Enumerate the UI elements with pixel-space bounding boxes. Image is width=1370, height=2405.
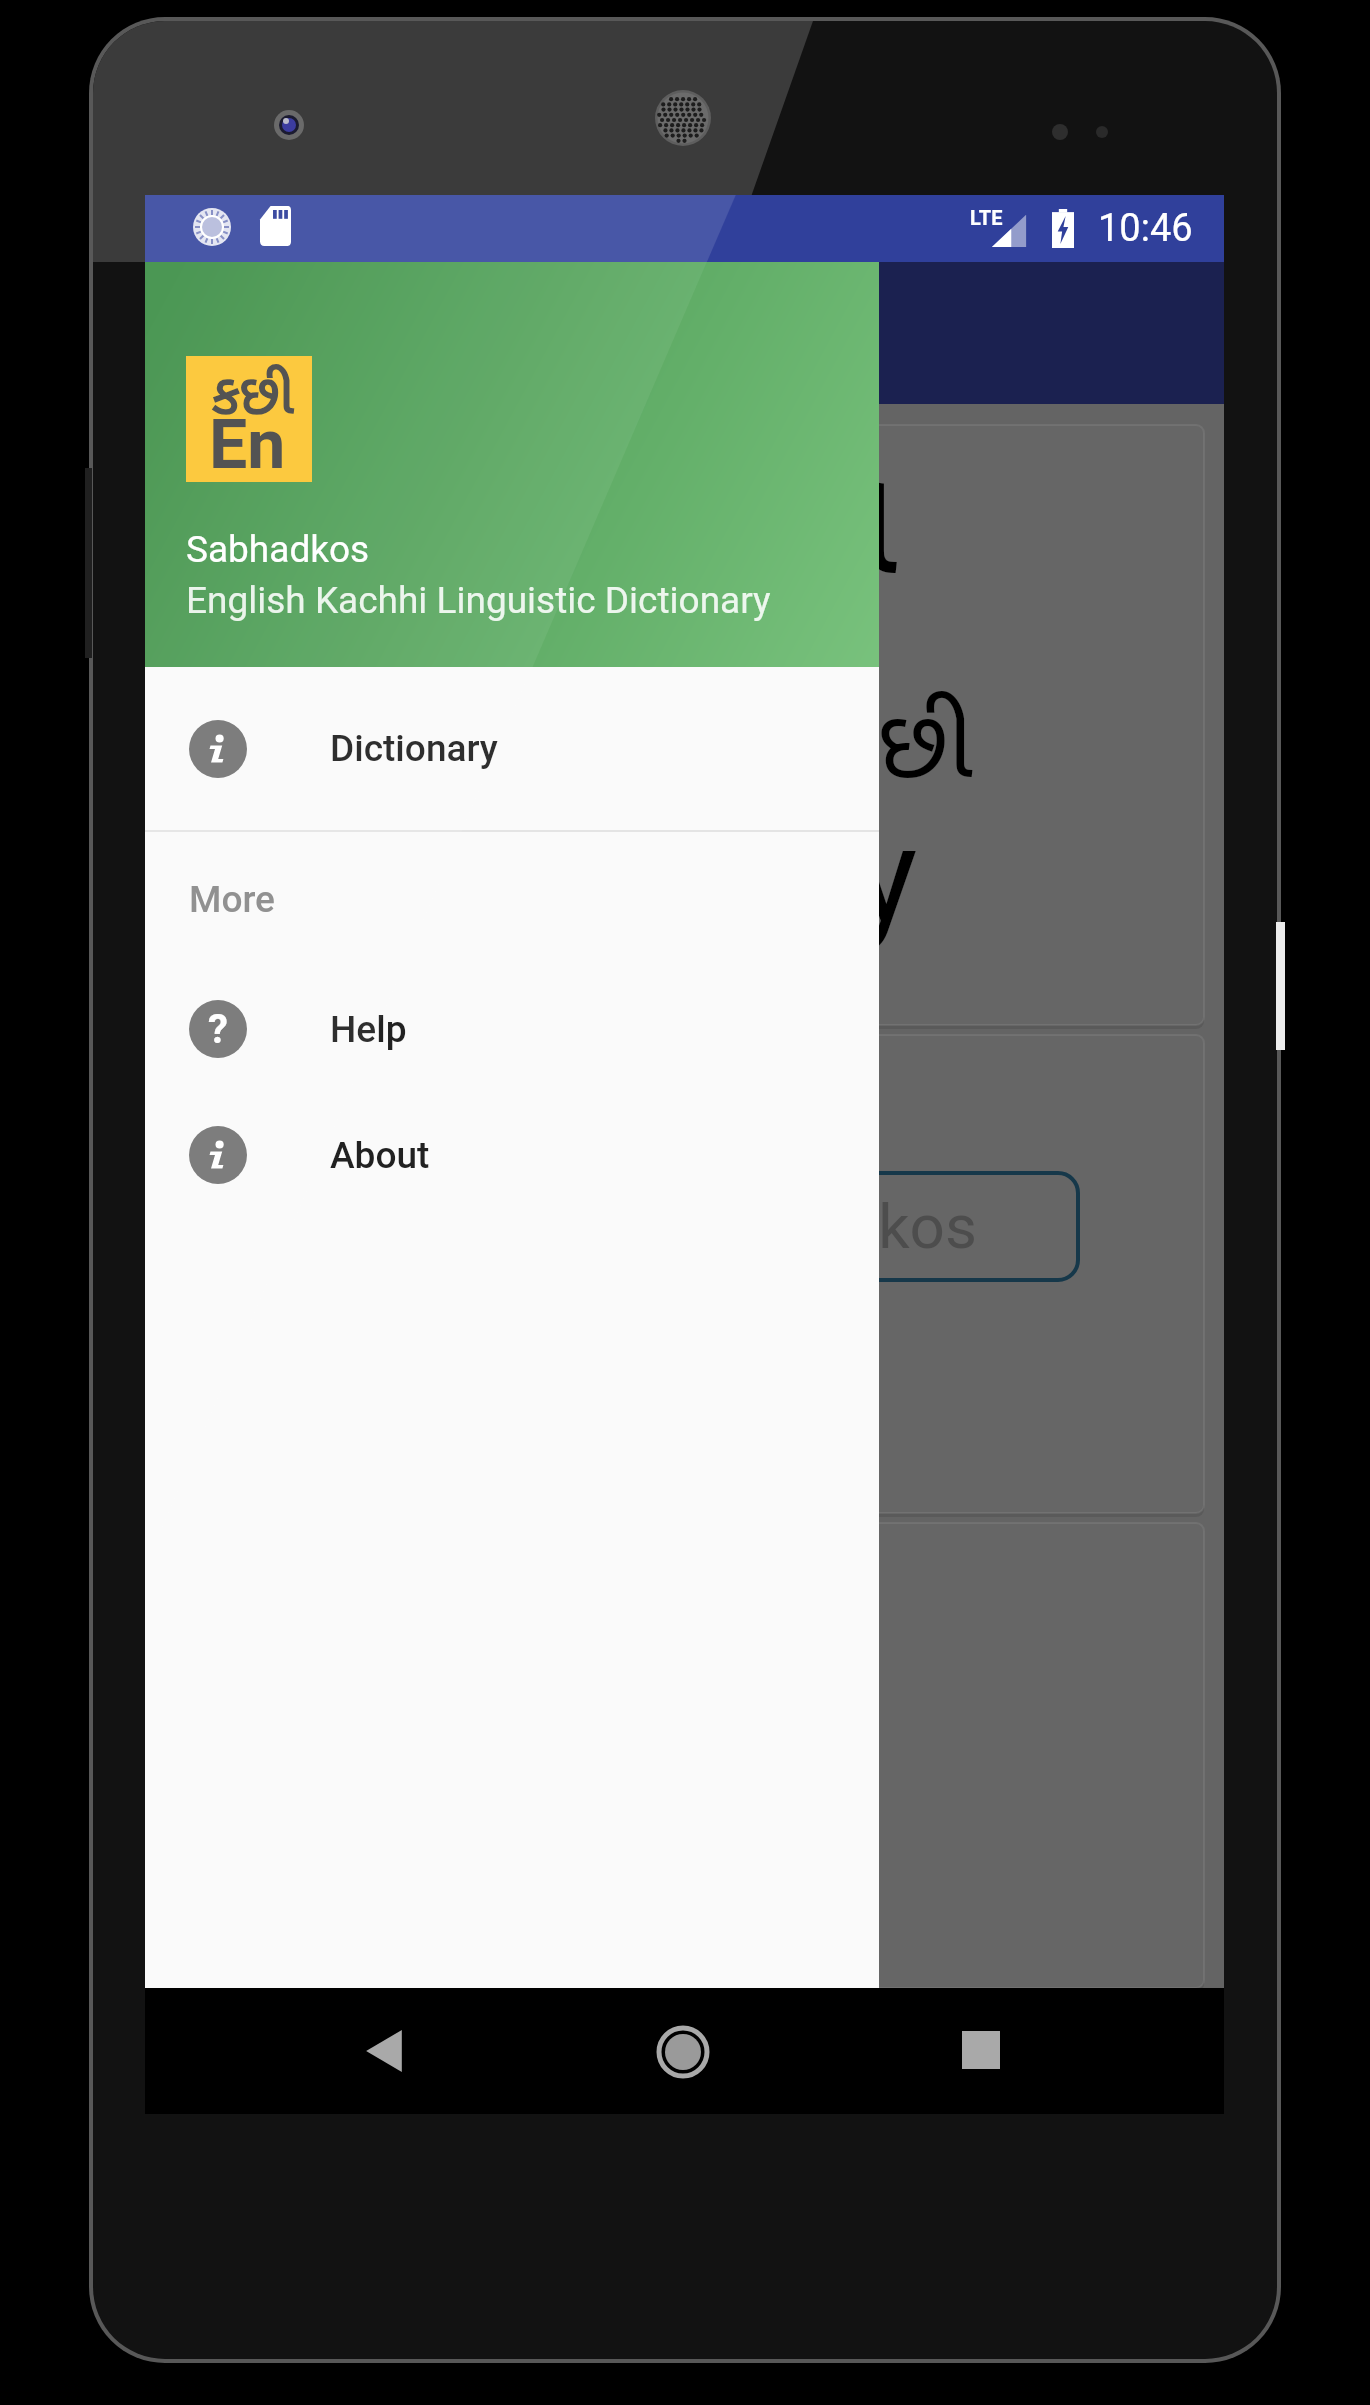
button[interactable]: Home: [655, 2024, 711, 2080]
staticText: 10:46: [1098, 206, 1193, 251]
button[interactable]: Back: [360, 2027, 411, 2075]
staticText: Dictionary: [317, 797, 1157, 954]
staticText: ઇંગ્લિશ કછી: [550, 691, 1190, 816]
staticText: Sabhadkos: [186, 528, 370, 571]
staticText: Dictionary: [330, 727, 498, 770]
staticText: Sabhadkos: [670, 1190, 977, 1263]
staticText: En: [209, 405, 286, 485]
staticText: LTE: [970, 206, 1003, 229]
staticText: Help: [330, 1008, 407, 1051]
staticText: More: [189, 878, 275, 921]
button[interactable]: About: [145, 1092, 879, 1218]
staticText: કછી: [212, 365, 294, 435]
staticText: ?: [208, 1006, 228, 1053]
button[interactable]: ?: [145, 966, 879, 1092]
button[interactable]: Dictionary: [145, 667, 879, 830]
staticText: About: [330, 1134, 430, 1177]
button[interactable]: More: [145, 832, 879, 966]
staticText: શબ્દકોશ: [437, 439, 1197, 635]
staticText: English Kachhi Linguistic Dictionary: [186, 579, 771, 622]
